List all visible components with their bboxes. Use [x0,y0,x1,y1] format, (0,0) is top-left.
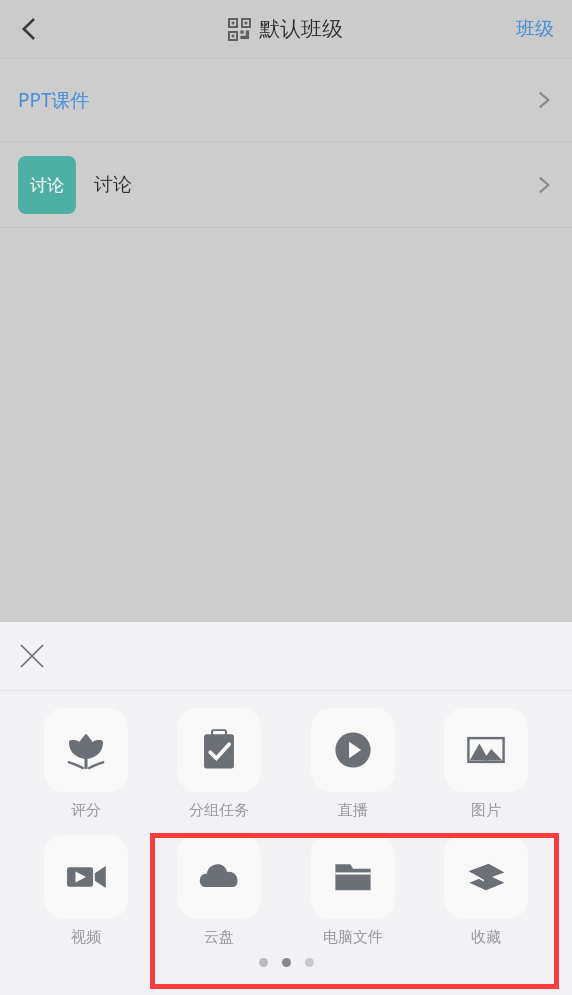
button[interactable]: PPT课件 [0,59,572,141]
button[interactable]: 分组任务 [171,708,267,820]
button[interactable]: 班级 [498,0,572,58]
staticText: 图片 [471,801,501,820]
staticText: 班级 [516,17,554,41]
staticText: 收藏 [471,928,501,947]
button[interactable]: 电脑文件 [305,835,401,947]
button[interactable]: Back [0,0,58,58]
staticText: 视频 [71,928,101,947]
button[interactable]: 评分 [38,708,134,820]
staticText: PPT课件 [18,87,90,113]
staticText: 讨论 [30,175,64,196]
staticText: 直播 [338,801,368,820]
button[interactable]: Close [11,635,53,677]
button[interactable]: 直播 [305,708,401,820]
button[interactable]: 视频 [38,835,134,947]
button[interactable]: 图片 [438,708,534,820]
staticText: 评分 [71,801,101,820]
button[interactable]: 讨论 [0,142,572,227]
button[interactable]: 收藏 [438,835,534,947]
staticText: 云盘 [204,928,234,947]
staticText: 电脑文件 [323,928,383,947]
staticText: 讨论 [94,173,132,197]
staticText: 默认班级 [259,16,343,42]
staticText: 分组任务 [189,801,249,820]
button[interactable]: 云盘 [171,835,267,947]
